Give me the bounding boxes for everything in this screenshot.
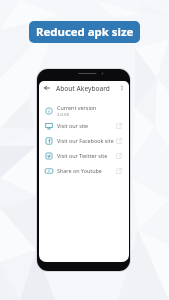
staticText: Share on Youtube [57, 167, 102, 174]
button[interactable]: Visit our Facebook site [39, 133, 129, 148]
other: Back [44, 85, 50, 91]
staticText: Visit our site [57, 122, 89, 129]
staticText: About Akeyboard [56, 84, 110, 93]
button[interactable]: Reduced apk size [29, 21, 140, 43]
button[interactable]: Current version [39, 103, 129, 118]
staticText: Visit our Facebook site [57, 137, 114, 144]
staticText: Visit our Twitter site [57, 152, 108, 159]
button[interactable]: Back [39, 81, 129, 95]
staticText: 3.0.58 [57, 112, 69, 118]
button[interactable]: Visit our Twitter site [39, 148, 129, 163]
other: More options [118, 84, 126, 92]
staticText: Reduced apk size [36, 24, 134, 40]
staticText: Current version [57, 104, 97, 111]
button[interactable]: Visit our site [39, 118, 129, 133]
button[interactable]: Share on Youtube [39, 163, 129, 178]
